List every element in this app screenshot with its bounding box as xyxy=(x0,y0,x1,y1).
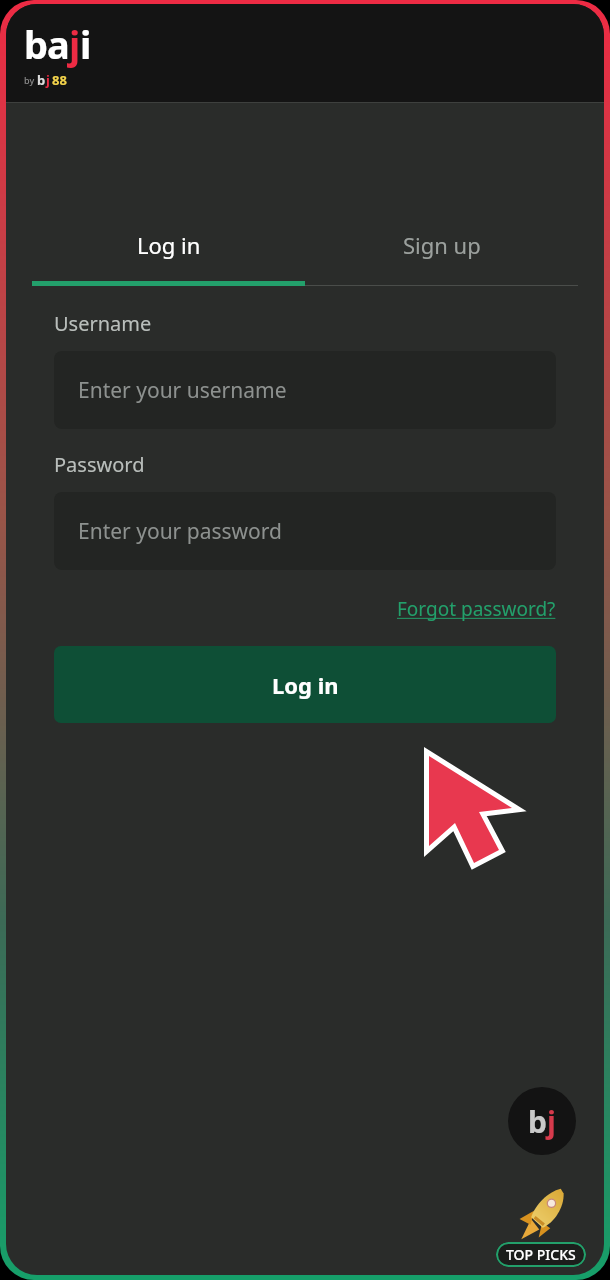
staticText: ba xyxy=(24,18,69,70)
staticText: Forgot password? xyxy=(397,596,556,622)
staticText: Password xyxy=(54,451,145,478)
staticText: Log in xyxy=(272,670,339,700)
staticText: TOP PICKS xyxy=(506,1245,576,1264)
staticText: b xyxy=(528,1101,547,1142)
staticText: Enter your password xyxy=(78,517,282,546)
staticText: Username xyxy=(54,310,152,337)
staticText: j xyxy=(547,1101,556,1142)
button[interactable]: Sign up xyxy=(305,223,578,267)
staticText: j xyxy=(46,71,50,89)
button[interactable]: ba xyxy=(24,18,91,89)
button[interactable]: Enter your username xyxy=(54,351,556,429)
staticText: 88 xyxy=(52,71,67,89)
staticText: i xyxy=(80,18,91,70)
button[interactable]: Top Picks xyxy=(496,1183,586,1267)
button[interactable]: Log in xyxy=(54,646,556,723)
staticText: b xyxy=(37,71,46,89)
staticText: j xyxy=(69,18,80,70)
staticText: by xyxy=(24,74,37,86)
button[interactable]: bj88 brand xyxy=(508,1087,576,1155)
button[interactable]: Log in xyxy=(32,223,305,267)
staticText: Log in xyxy=(137,230,201,260)
staticText: Sign up xyxy=(403,230,481,260)
button[interactable]: Forgot password? xyxy=(393,592,560,626)
button[interactable]: Enter your password xyxy=(54,492,556,570)
staticText: Enter your username xyxy=(78,376,287,405)
